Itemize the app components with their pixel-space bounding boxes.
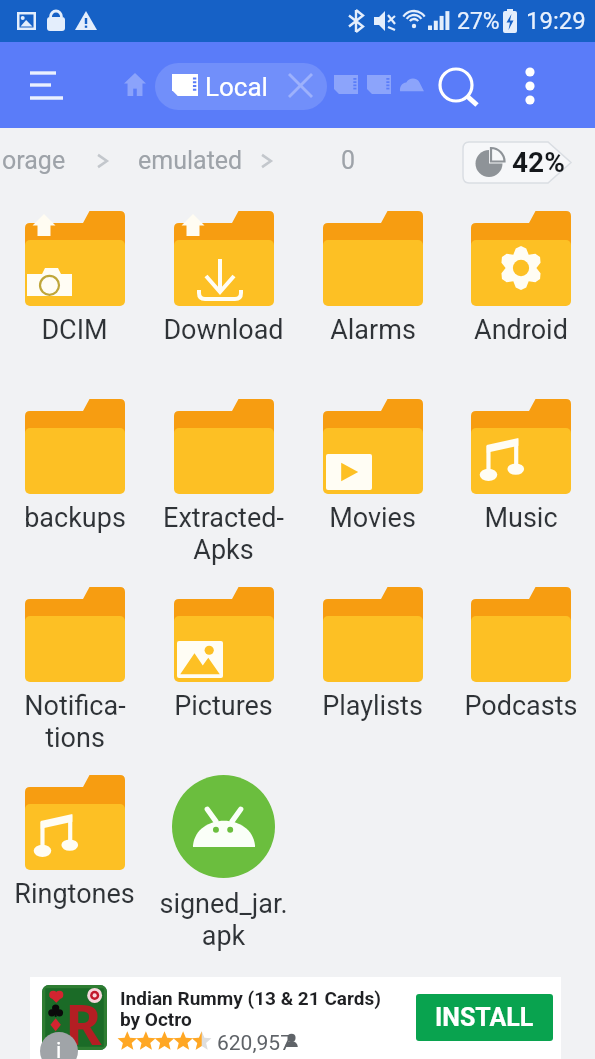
button[interactable]: Movies [298,393,447,581]
staticText: i [56,1038,62,1059]
button[interactable]: Playlists [298,581,447,769]
staticText: 620,957 [217,1031,292,1056]
button[interactable]: 0 [339,146,358,175]
staticText: 27% [457,8,500,35]
button[interactable]: backups [0,393,149,581]
button[interactable]: Notifica- tions [0,581,149,769]
staticText: emulated [138,146,243,175]
staticText: DCIM [41,314,108,346]
button[interactable]: Music [447,393,595,581]
button[interactable]: Pictures [149,581,298,769]
staticText: Pictures [174,690,273,722]
button[interactable]: Internal storage [334,75,358,94]
button[interactable]: SD card [367,75,391,94]
button[interactable]: More options [510,60,554,112]
button[interactable]: signed_jar. apk [149,769,298,957]
button[interactable]: Menu [14,58,80,112]
staticText: orage [2,146,66,175]
button[interactable]: orage [0,146,68,175]
button[interactable]: Alarms [298,205,447,393]
button[interactable]: 42% [462,141,572,184]
staticText: Podcasts [464,690,578,722]
staticText: Music [484,502,558,534]
button[interactable]: Close [278,63,324,109]
staticText: Local [205,72,268,102]
button[interactable]: INSTALL [416,994,553,1041]
staticText: 19:29 [526,7,586,35]
staticText: 42% [512,146,565,179]
staticText: backups [24,502,126,534]
button[interactable]: Search [432,60,486,114]
staticText: 0 [341,146,356,175]
staticText: Indian Rummy (13 & 21 Cards) by Octro [120,987,381,1030]
button[interactable]: emulated [136,146,245,175]
staticText: Alarms [330,314,416,346]
staticText: signed_jar. apk [159,888,288,951]
button[interactable]: Download [149,205,298,393]
staticText: Playlists [322,690,423,722]
button[interactable]: Ringtones [0,769,149,957]
staticText: Ringtones [14,878,135,910]
staticText: Movies [329,502,416,534]
button[interactable]: Podcasts [447,581,595,769]
staticText: Android [474,314,568,346]
staticText: INSTALL [435,1003,534,1032]
button[interactable]: Cloud [399,74,425,95]
button[interactable]: Android [447,205,595,393]
staticText: R [65,985,102,1050]
button[interactable]: Extracted- Apks [149,393,298,581]
button[interactable] [155,63,327,110]
staticText: Notifica- tions [24,690,126,753]
button[interactable]: DCIM [0,205,149,393]
staticText: Download [163,314,284,346]
staticText: Extracted- Apks [163,502,284,565]
button[interactable]: Home [112,62,158,108]
